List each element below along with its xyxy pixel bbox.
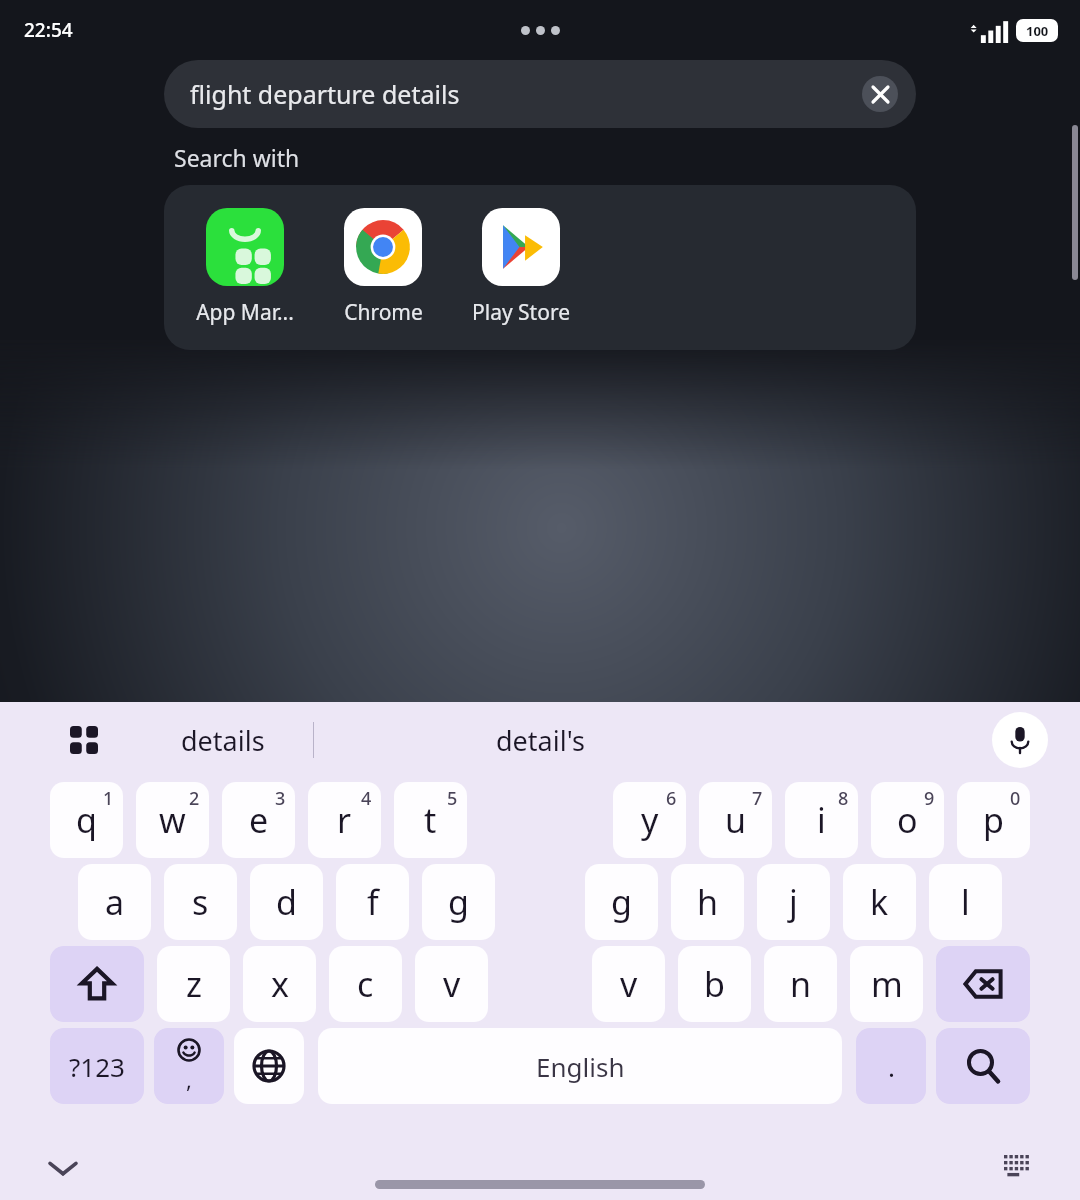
button[interactable]: h <box>671 864 744 940</box>
staticText: u <box>725 797 747 843</box>
button[interactable]: Clear search <box>862 76 898 112</box>
button[interactable]: detail's <box>420 702 660 778</box>
button[interactable]: g <box>585 864 658 940</box>
button[interactable]: Play Store <box>452 185 590 350</box>
button[interactable]: x <box>243 946 316 1022</box>
button[interactable]: Shift <box>50 946 144 1022</box>
button[interactable]: v <box>415 946 488 1022</box>
staticText: p <box>983 797 1004 843</box>
staticText: s <box>192 879 209 925</box>
staticText: y <box>641 797 659 843</box>
staticText: w <box>159 797 186 843</box>
button[interactable]: English <box>318 1028 842 1104</box>
staticText: details <box>181 722 265 759</box>
button[interactable]: f <box>336 864 409 940</box>
staticText: m <box>871 961 903 1007</box>
staticText: q <box>76 797 97 843</box>
button[interactable]: ?123 <box>50 1028 144 1104</box>
button[interactable]: Hide keyboard <box>40 1145 86 1191</box>
button[interactable]: o <box>871 782 944 858</box>
button[interactable]: e <box>222 782 295 858</box>
button[interactable]: q <box>50 782 123 858</box>
staticText: g <box>611 879 632 925</box>
button[interactable]: details <box>130 702 315 778</box>
staticText: j <box>789 879 798 925</box>
staticText: 7 <box>752 786 763 811</box>
staticText: 3 <box>275 786 286 811</box>
button[interactable]: Chrome <box>314 185 452 350</box>
button[interactable]: i <box>785 782 858 858</box>
button[interactable]: k <box>843 864 916 940</box>
button[interactable]: Change language <box>234 1028 304 1104</box>
staticText: detail's <box>496 722 585 759</box>
staticText: 0 <box>1010 786 1021 811</box>
button[interactable]: g <box>422 864 495 940</box>
button[interactable]: n <box>764 946 837 1022</box>
button[interactable]: p <box>957 782 1030 858</box>
button[interactable]: u <box>699 782 772 858</box>
staticText: o <box>897 797 918 843</box>
staticText: h <box>697 879 719 925</box>
staticText: 100 <box>1026 22 1049 40</box>
staticText: . <box>888 1049 895 1084</box>
staticText: b <box>704 961 725 1007</box>
staticText: g <box>448 879 469 925</box>
button[interactable]: Search <box>936 1028 1030 1104</box>
staticText: Play Store <box>472 298 570 327</box>
staticText: c <box>357 961 374 1007</box>
button[interactable]: y <box>613 782 686 858</box>
staticText: z <box>186 961 202 1007</box>
staticText: 5 <box>447 786 458 811</box>
button[interactable]: Backspace <box>936 946 1030 1022</box>
staticText: v <box>443 961 461 1007</box>
button[interactable]: Emoji and comma <box>154 1028 224 1104</box>
button[interactable]: l <box>929 864 1002 940</box>
staticText: English <box>536 1049 625 1084</box>
staticText: k <box>870 879 889 925</box>
staticText: 22:54 <box>24 17 73 43</box>
staticText: , <box>186 1064 192 1094</box>
staticText: 1 <box>103 786 114 811</box>
staticText: 4 <box>361 786 372 811</box>
staticText: ?123 <box>69 1049 125 1084</box>
button[interactable]: t <box>394 782 467 858</box>
button[interactable]: j <box>757 864 830 940</box>
staticText: Chrome <box>344 298 423 327</box>
staticText: r <box>337 797 352 843</box>
staticText: Search with <box>174 142 300 173</box>
staticText: i <box>817 797 826 843</box>
staticText: l <box>961 879 970 925</box>
staticText: 8 <box>838 786 849 811</box>
button[interactable]: c <box>329 946 402 1022</box>
staticText: t <box>424 797 437 843</box>
button[interactable]: z <box>157 946 230 1022</box>
button[interactable]: App Mar... <box>176 185 314 350</box>
button[interactable]: d <box>250 864 323 940</box>
button[interactable]: a <box>78 864 151 940</box>
staticText: n <box>790 961 812 1007</box>
staticText: d <box>276 879 297 925</box>
staticText: a <box>105 879 125 925</box>
staticText: 6 <box>666 786 677 811</box>
button[interactable]: b <box>678 946 751 1022</box>
staticText: x <box>271 961 289 1007</box>
button[interactable]: . <box>856 1028 926 1104</box>
button[interactable]: v <box>592 946 665 1022</box>
button[interactable]: flight departure details <box>164 60 916 128</box>
staticText: f <box>367 879 379 925</box>
button[interactable]: m <box>850 946 923 1022</box>
button[interactable]: r <box>308 782 381 858</box>
button[interactable]: Keyboard toolbar <box>62 718 106 762</box>
button[interactable]: Switch keyboard <box>996 1147 1038 1189</box>
button[interactable]: Voice input <box>992 712 1048 768</box>
button[interactable]: s <box>164 864 237 940</box>
staticText: e <box>249 797 269 843</box>
staticText: flight departure details <box>190 77 460 111</box>
staticText: App Mar... <box>196 298 294 327</box>
button[interactable]: w <box>136 782 209 858</box>
staticText: 2 <box>189 786 200 811</box>
staticText: 9 <box>924 786 935 811</box>
staticText: v <box>620 961 638 1007</box>
